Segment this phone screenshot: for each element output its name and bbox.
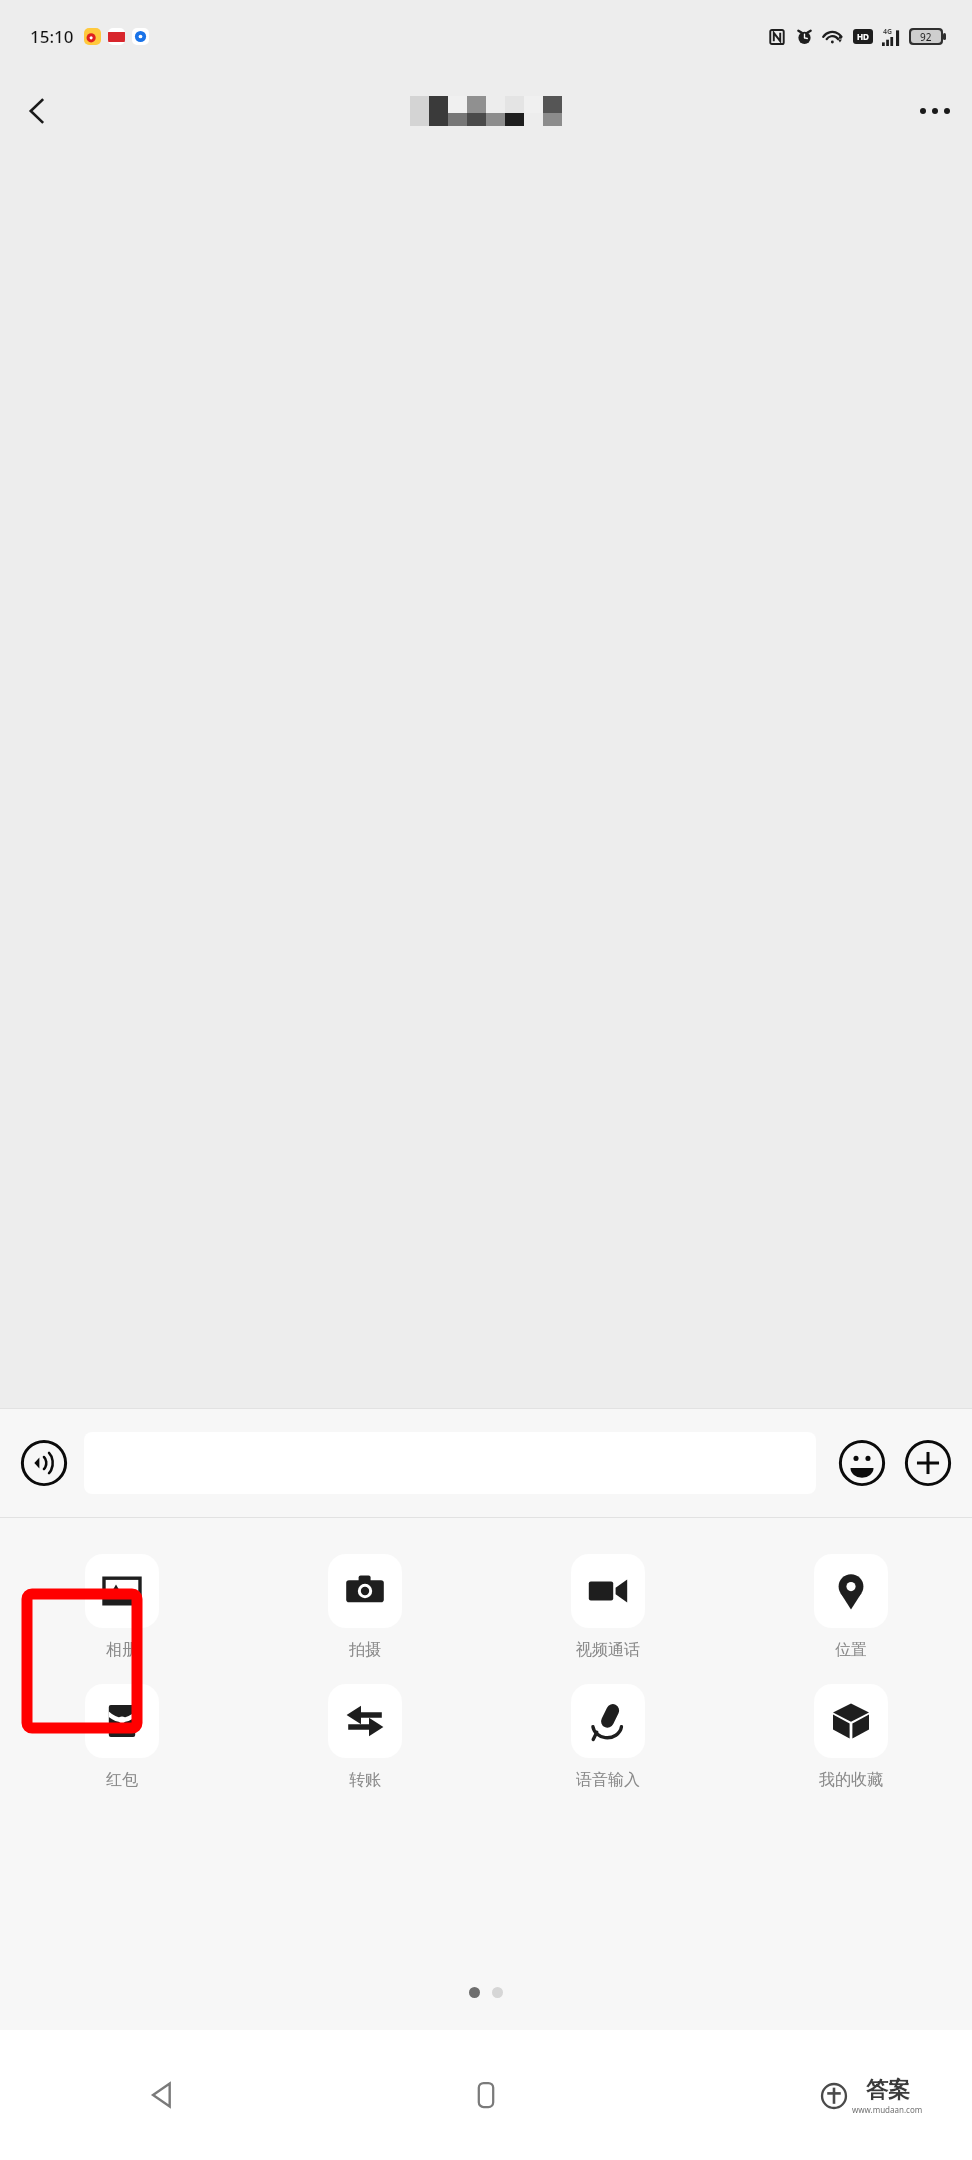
staticText: 4G — [883, 27, 893, 37]
staticText: 视频通话 — [576, 1640, 640, 1660]
button[interactable]: 视频通话 — [486, 1554, 729, 1660]
button[interactable]: Back — [0, 74, 74, 148]
button[interactable]: 语音输入 — [486, 1684, 729, 1790]
button[interactable]: Emoji — [830, 1431, 894, 1495]
staticText: 92 — [920, 30, 932, 43]
staticText: 拍摄 — [349, 1640, 381, 1660]
staticText: HD — [857, 31, 869, 42]
staticText: 位置 — [835, 1640, 867, 1660]
button[interactable]: 红包 — [0, 1684, 243, 1790]
button[interactable]: 我的收藏 — [729, 1684, 972, 1790]
staticText: 我的收藏 — [819, 1770, 883, 1790]
button[interactable]: 转账 — [243, 1684, 486, 1790]
button[interactable]: More options — [898, 74, 972, 148]
staticText: 红包 — [106, 1770, 138, 1790]
staticText: 相册 — [106, 1640, 138, 1660]
button[interactable]: Back — [0, 2030, 324, 2160]
button[interactable]: Home — [324, 2030, 648, 2160]
staticText: 语音输入 — [576, 1770, 640, 1790]
button[interactable]: More attachments — [896, 1431, 960, 1495]
button[interactable]: 相册 — [0, 1554, 243, 1660]
staticText: 15:10 — [30, 25, 74, 48]
button[interactable]: 位置 — [729, 1554, 972, 1660]
button[interactable]: Voice input — [12, 1431, 76, 1495]
staticText: www.mudaan.com — [852, 2104, 923, 2115]
button[interactable]: Recent apps — [648, 2030, 972, 2160]
staticText: 转账 — [349, 1770, 381, 1790]
button[interactable]: 拍摄 — [243, 1554, 486, 1660]
staticText: 答案 — [866, 2076, 910, 2104]
